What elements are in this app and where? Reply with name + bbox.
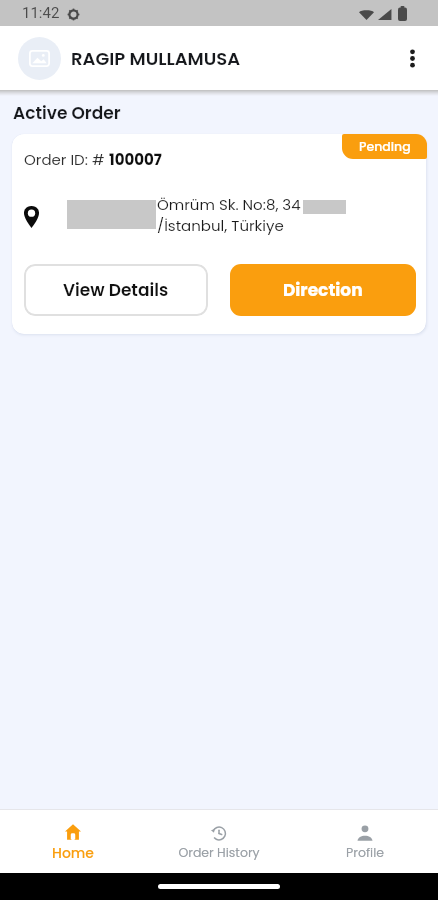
button[interactable]: Home bbox=[0, 809, 146, 873]
staticText: Home bbox=[52, 843, 94, 863]
button[interactable]: Order History bbox=[146, 809, 292, 873]
staticText: Pending bbox=[359, 138, 411, 155]
button[interactable]: Profile photo bbox=[18, 37, 61, 80]
button[interactable]: Direction bbox=[230, 264, 416, 316]
button[interactable]: Pending bbox=[342, 134, 427, 159]
staticText: Direction bbox=[283, 278, 363, 302]
staticText: Order History bbox=[178, 844, 260, 861]
staticText: Ömrüm Sk. No:8, 34 bbox=[157, 194, 301, 215]
button[interactable]: More options bbox=[390, 36, 434, 80]
staticText: 11:42 bbox=[22, 4, 60, 22]
staticText: Active Order bbox=[13, 101, 121, 125]
staticText: RAGIP MULLAMUSA bbox=[71, 46, 241, 71]
button[interactable]: Profile bbox=[292, 809, 438, 873]
staticText: Profile bbox=[346, 844, 384, 861]
staticText: /İstanbul, Türkiye bbox=[157, 215, 284, 236]
button[interactable]: View Details bbox=[24, 264, 208, 316]
staticText: View Details bbox=[63, 278, 169, 302]
staticText: 100007 bbox=[109, 149, 162, 170]
staticText: Order ID: # bbox=[24, 149, 109, 170]
